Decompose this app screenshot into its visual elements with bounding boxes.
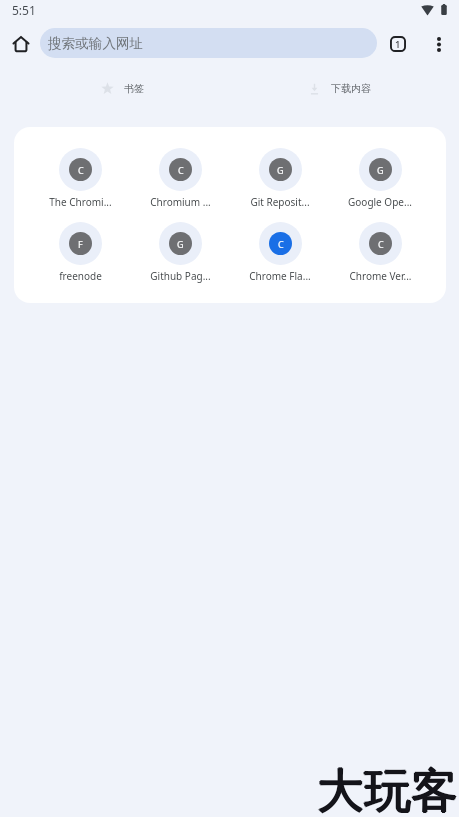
button[interactable]: G [230,148,330,209]
staticText: C [378,238,384,250]
button[interactable]: C [30,148,130,209]
staticText: C [78,164,84,176]
button[interactable]: C [130,148,230,209]
staticText: Git Reposit... [250,195,310,209]
button[interactable]: 搜索或输入网址 [40,28,377,58]
staticText: 下载内容 [331,82,371,95]
staticText: 大玩客 [318,762,459,817]
staticText: Chrome Ver... [349,269,412,283]
staticText: G [277,164,284,176]
staticText: Github Pag... [150,269,211,283]
staticText: 大玩客 [316,762,457,817]
button[interactable]: 下载内容 [231,82,449,95]
staticText: 搜索或输入网址 [48,35,144,52]
button[interactable]: C [230,222,330,283]
staticText: G [177,238,184,250]
staticText: C [178,164,184,176]
button[interactable]: F [30,222,130,283]
staticText: F [78,238,83,250]
staticText: 1 [395,38,401,51]
button[interactable]: Tabs: 1 [384,30,412,58]
button[interactable]: G [330,148,430,209]
staticText: The Chromi... [49,195,112,209]
button[interactable]: More options [425,30,453,58]
staticText: 大玩客 [317,763,458,817]
staticText: 书签 [124,82,144,95]
staticText: freenode [59,269,102,283]
button[interactable]: G [130,222,230,283]
staticText: Chrome Fla... [249,269,311,283]
button[interactable]: C [330,222,430,283]
staticText: 5:51 [12,2,36,18]
staticText: 大玩客 [317,761,458,817]
staticText: Google Ope... [348,195,412,209]
staticText: C [278,238,284,250]
button[interactable]: 书签 [13,82,231,95]
staticText: Chromium ... [150,195,211,209]
staticText: 大玩客 [317,762,458,817]
button[interactable]: Home [5,28,37,60]
staticText: G [377,164,384,176]
